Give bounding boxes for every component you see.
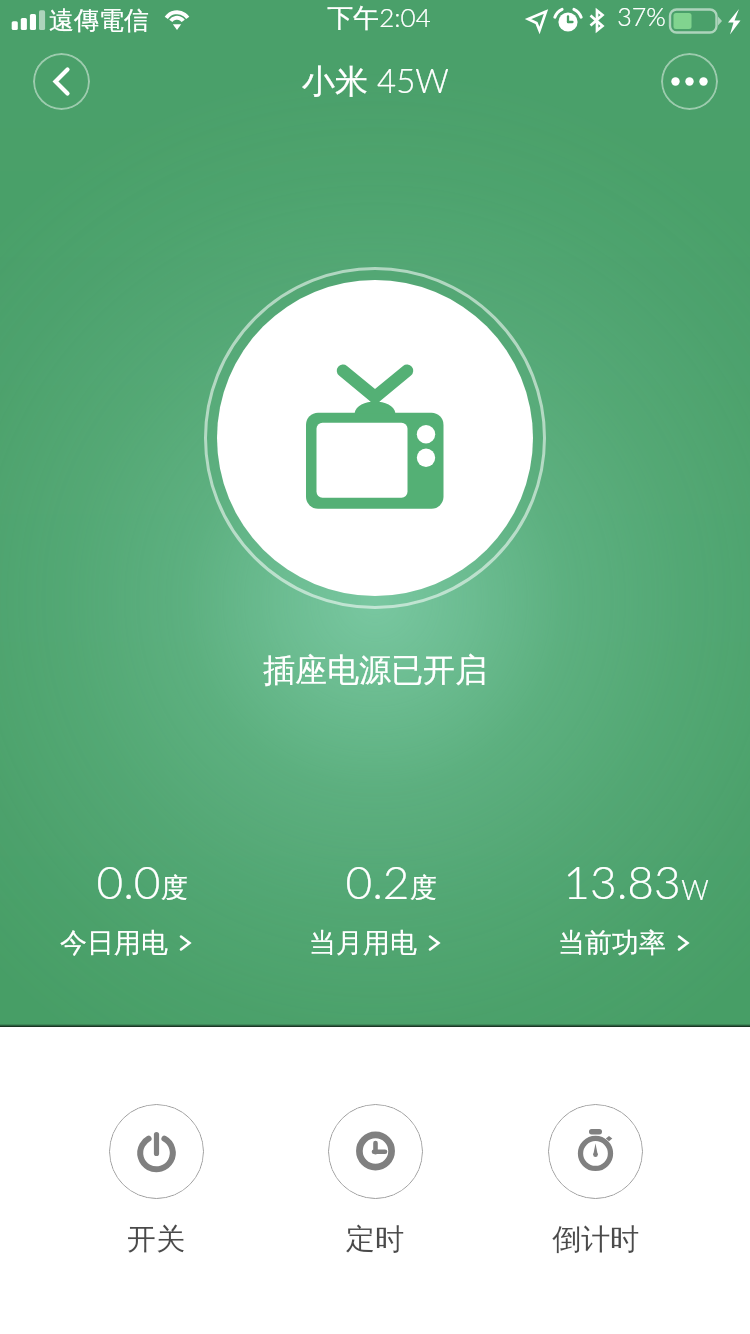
staticText: 当前功率 <box>558 926 666 960</box>
staticText: 0.2 <box>345 854 410 909</box>
button[interactable]: 0.2 <box>250 858 500 968</box>
staticText: 开关 <box>127 1221 185 1258</box>
button[interactable]: Toggle power <box>199 262 551 614</box>
staticText: 今日用电 <box>60 926 168 960</box>
staticText: 当月用电 <box>309 926 417 960</box>
staticText: W <box>681 873 709 905</box>
button[interactable]: Back <box>33 53 90 110</box>
staticText: 度 <box>410 871 437 905</box>
button[interactable]: 开关 <box>86 1094 226 1258</box>
staticText: 13.83 <box>563 854 681 909</box>
button[interactable]: More options <box>661 53 718 110</box>
button[interactable]: 0.0 <box>1 858 251 968</box>
staticText: 插座电源已开启 <box>263 650 487 690</box>
staticText: 下午2:04 <box>327 1 431 34</box>
staticText: 定时 <box>346 1221 404 1258</box>
button[interactable]: 定时 <box>305 1094 445 1258</box>
staticText: 遠傳電信 <box>49 5 149 36</box>
staticText: 度 <box>161 871 188 905</box>
staticText: 37% <box>617 1 666 31</box>
staticText: 倒计时 <box>552 1221 639 1258</box>
button[interactable]: 倒计时 <box>525 1094 665 1258</box>
staticText: 0.0 <box>96 854 161 909</box>
button[interactable]: 13.83 <box>499 858 749 968</box>
staticText: 小米 45W <box>302 60 449 102</box>
